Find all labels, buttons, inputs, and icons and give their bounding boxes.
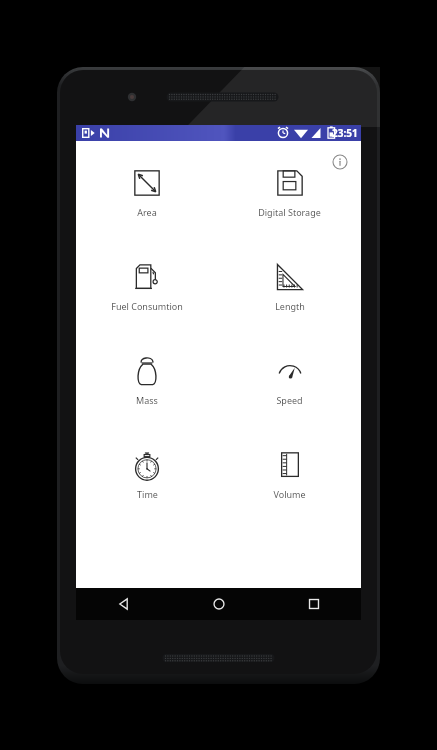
button[interactable]: Area [76,162,218,220]
button[interactable]: Length [218,256,361,314]
button[interactable]: Speed [218,350,361,408]
button[interactable]: Digital Storage [218,162,361,220]
button[interactable]: Time [76,444,218,502]
button[interactable]: Fuel Consumtion [76,256,218,314]
staticText: Digital Storage [258,206,321,218]
button[interactable]: About [327,149,353,175]
button[interactable]: Mass [76,350,218,408]
staticText: Volume [273,488,306,500]
staticText: Mass [136,394,158,406]
staticText: Speed [276,394,303,406]
staticText: 23:51 [332,126,358,140]
button[interactable]: Home [171,588,266,620]
staticText: Time [137,488,158,500]
staticText: Length [275,300,305,312]
button[interactable]: Recents [266,588,361,620]
button[interactable]: Volume [218,444,361,502]
staticText: Area [137,206,157,218]
button[interactable]: Back [76,588,171,620]
staticText: Fuel Consumtion [111,300,183,312]
